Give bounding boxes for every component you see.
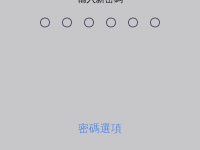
button[interactable]: 密碼選項 [72,119,128,138]
staticText: 輸入新密碼 [77,0,122,5]
staticText: 密碼選項 [78,122,122,135]
